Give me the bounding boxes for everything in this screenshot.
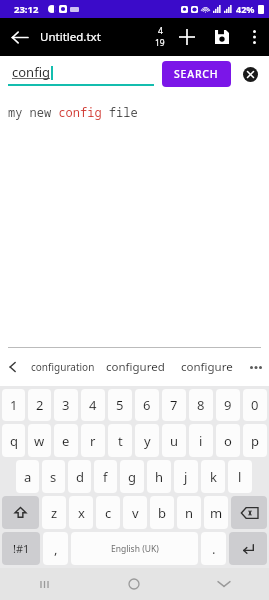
staticText: j xyxy=(184,468,188,486)
button[interactable]: 4 xyxy=(81,389,105,421)
staticText: 5 xyxy=(116,396,124,414)
staticText: , xyxy=(54,540,58,558)
button[interactable]: b xyxy=(150,496,174,529)
button[interactable]: SEARCH xyxy=(162,61,231,87)
staticText: 9 xyxy=(224,396,232,414)
button[interactable]: 6 xyxy=(135,389,159,421)
staticText: t xyxy=(118,432,123,450)
staticText: s xyxy=(50,468,57,486)
staticText: 6 xyxy=(143,396,151,414)
button[interactable]: x xyxy=(69,496,93,529)
staticText: 2 xyxy=(36,396,44,414)
staticText: SEARCH xyxy=(174,67,219,81)
button[interactable]: g xyxy=(120,460,144,493)
button[interactable]: t xyxy=(108,424,132,457)
staticText: 0 xyxy=(251,396,259,414)
staticText: v xyxy=(132,504,139,522)
button[interactable]: l xyxy=(228,460,252,493)
staticText: a xyxy=(24,468,32,486)
button[interactable]: o xyxy=(216,424,240,457)
staticText: 19 xyxy=(155,37,165,49)
button[interactable]: Previous suggestions xyxy=(0,348,26,386)
button[interactable]: j xyxy=(174,460,198,493)
staticText: m xyxy=(210,504,223,522)
button[interactable]: e xyxy=(54,424,78,457)
button[interactable]: Close search xyxy=(239,63,261,85)
button[interactable]: d xyxy=(68,460,91,493)
button[interactable]: p xyxy=(243,424,267,457)
button[interactable]: f xyxy=(94,460,117,493)
staticText: configure xyxy=(181,359,233,375)
button[interactable]: 1 xyxy=(2,389,25,421)
button[interactable]: 2 xyxy=(28,389,51,421)
staticText: !#1 xyxy=(13,541,30,556)
button[interactable]: 4 xyxy=(151,25,169,49)
button[interactable]: Shift xyxy=(2,496,39,529)
button[interactable]: , xyxy=(43,532,68,565)
staticText: English (UK) xyxy=(111,543,159,555)
button[interactable]: configuration xyxy=(26,348,99,386)
button[interactable]: y xyxy=(135,424,159,457)
staticText: 42% xyxy=(236,3,255,15)
staticText: i xyxy=(199,432,203,450)
staticText: r xyxy=(90,432,96,450)
button[interactable]: q xyxy=(2,424,25,457)
staticText: p xyxy=(251,432,259,450)
button[interactable]: English (UK) xyxy=(71,532,198,565)
staticText: 4 xyxy=(158,25,163,37)
button[interactable]: r xyxy=(81,424,105,457)
button[interactable]: configure xyxy=(171,348,243,386)
button[interactable]: Enter xyxy=(229,532,267,565)
button[interactable]: m xyxy=(204,496,228,529)
button[interactable]: 7 xyxy=(162,389,186,421)
staticText: y xyxy=(144,432,151,450)
button[interactable]: Home xyxy=(89,568,179,600)
button[interactable]: !#1 xyxy=(2,532,40,565)
staticText: 1 xyxy=(10,396,18,414)
button[interactable]: . xyxy=(201,532,226,565)
button[interactable]: 5 xyxy=(108,389,132,421)
staticText: d xyxy=(76,468,84,486)
button[interactable]: Hide keyboard xyxy=(179,568,269,600)
staticText: 23:12 xyxy=(14,3,39,16)
button[interactable]: config xyxy=(8,63,154,86)
button[interactable]: w xyxy=(28,424,51,457)
button[interactable]: k xyxy=(201,460,225,493)
staticText: q xyxy=(10,432,18,450)
button[interactable]: i xyxy=(189,424,213,457)
button[interactable]: a xyxy=(16,460,39,493)
button[interactable]: More suggestions xyxy=(243,348,269,386)
button[interactable]: u xyxy=(162,424,186,457)
staticText: configured xyxy=(106,359,165,375)
staticText: g xyxy=(128,468,136,486)
staticText: . xyxy=(212,540,216,558)
staticText: c xyxy=(105,504,112,522)
staticText: Untitled.txt xyxy=(40,29,101,45)
button[interactable]: Backspace xyxy=(231,496,267,529)
button[interactable]: configured xyxy=(99,348,171,386)
button[interactable]: Add xyxy=(169,19,205,55)
staticText: 7 xyxy=(170,396,178,414)
button[interactable]: Back xyxy=(0,18,38,56)
button[interactable]: 0 xyxy=(243,389,267,421)
button[interactable]: More options xyxy=(239,22,269,52)
staticText: k xyxy=(210,468,217,486)
button[interactable]: 3 xyxy=(54,389,78,421)
staticText: configuration xyxy=(31,360,95,374)
staticText: f xyxy=(103,468,108,486)
staticText: u xyxy=(170,432,179,450)
button[interactable]: n xyxy=(177,496,201,529)
button[interactable]: z xyxy=(42,496,66,529)
button[interactable]: 8 xyxy=(189,389,213,421)
button[interactable]: s xyxy=(42,460,65,493)
button[interactable]: v xyxy=(123,496,147,529)
staticText: 8 xyxy=(197,396,205,414)
staticText: z xyxy=(51,504,58,522)
staticText: b xyxy=(158,504,166,522)
staticText: l xyxy=(238,468,242,486)
button[interactable]: Save xyxy=(205,20,239,54)
button[interactable]: c xyxy=(96,496,120,529)
button[interactable]: 9 xyxy=(216,389,240,421)
button[interactable]: Recent apps xyxy=(0,568,89,600)
button[interactable]: h xyxy=(147,460,171,493)
